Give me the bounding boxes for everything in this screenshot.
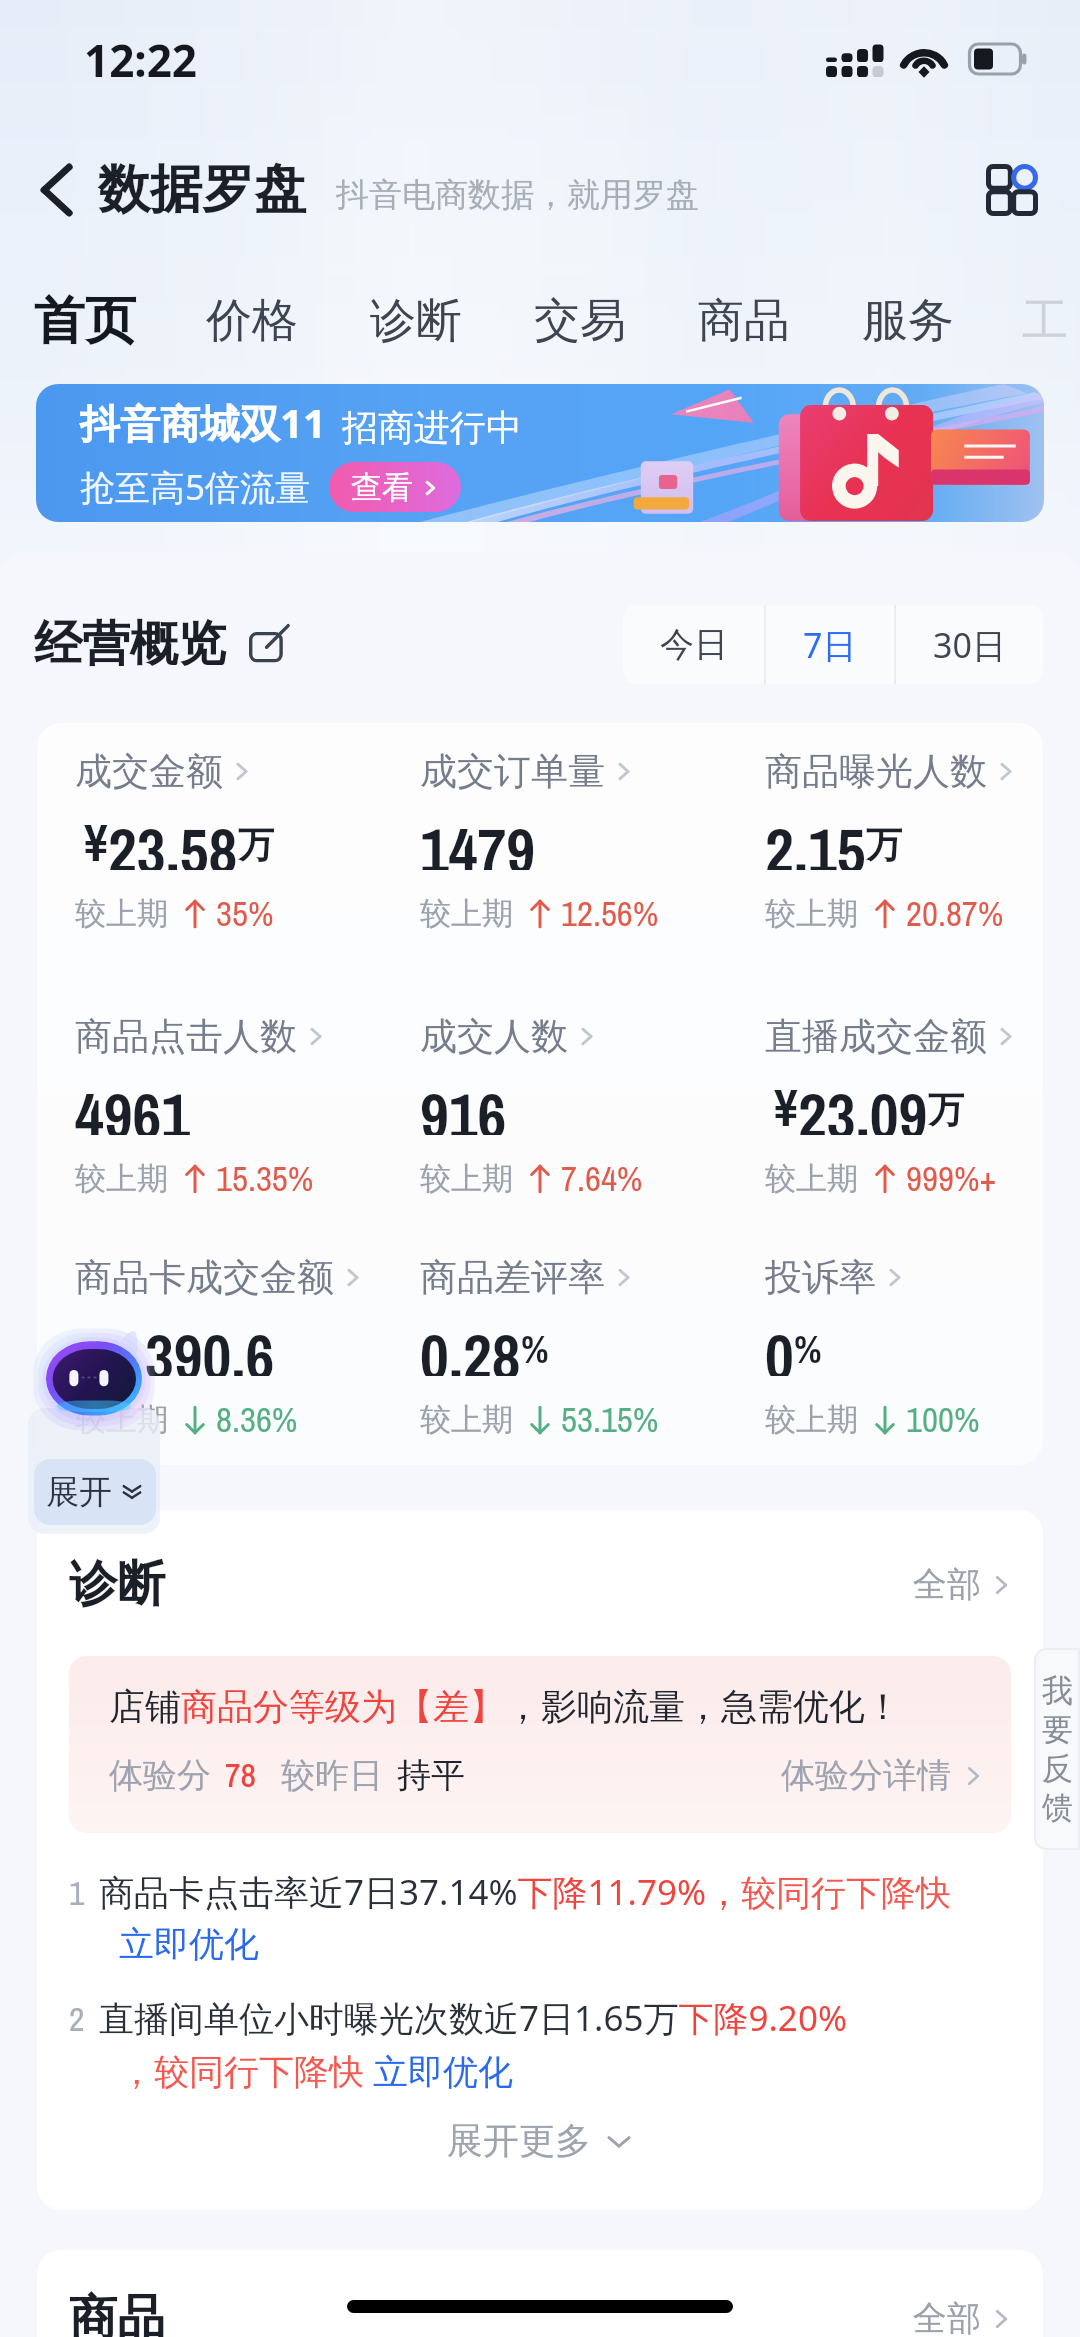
staticText: 工 bbox=[1022, 292, 1068, 350]
button[interactable]: 今日 bbox=[623, 605, 764, 684]
staticText: 15.35% bbox=[216, 1155, 314, 1202]
staticText: 直播成交金额 bbox=[765, 1013, 987, 1060]
staticText: 390.6 bbox=[145, 1314, 275, 1376]
button[interactable]: 商品卡成交金额 bbox=[75, 1254, 364, 1443]
button[interactable]: 商品差评率 bbox=[420, 1254, 659, 1443]
staticText: 0.28 bbox=[420, 1314, 521, 1376]
button[interactable]: 商品曝光人数 bbox=[765, 748, 1017, 937]
staticText: 53.15% bbox=[561, 1396, 659, 1443]
button[interactable]: 价格 bbox=[206, 292, 298, 350]
button[interactable]: 全部 bbox=[913, 1563, 1013, 1606]
staticText: 916 bbox=[420, 1073, 507, 1135]
staticText: 万 bbox=[866, 822, 902, 867]
staticText: 抖音商城双11 bbox=[80, 395, 326, 450]
staticText: 展开更多 bbox=[447, 2118, 591, 2163]
staticText: ¥ bbox=[84, 807, 108, 869]
staticText: 体验分详情 bbox=[781, 1754, 951, 1797]
button[interactable]: Back bbox=[26, 159, 88, 221]
staticText: % bbox=[794, 1324, 822, 1375]
button[interactable]: 全部 bbox=[913, 2297, 1013, 2337]
staticText: 1 bbox=[69, 1870, 85, 1916]
button[interactable]: 首页 bbox=[34, 289, 136, 353]
staticText: 全部 bbox=[913, 1563, 981, 1606]
staticText: 招商进行中 bbox=[342, 405, 522, 450]
button[interactable]: 成交人数 bbox=[420, 1013, 643, 1202]
staticText: 展开 bbox=[46, 1471, 112, 1513]
staticText: 较上期 bbox=[420, 894, 513, 933]
button[interactable]: AI assistant bbox=[34, 1322, 154, 1442]
staticText: 较上期 bbox=[765, 894, 858, 933]
staticText: 23.09 bbox=[798, 1073, 928, 1135]
staticText: 成交金额 bbox=[75, 748, 223, 795]
button[interactable]: 投诉率 bbox=[765, 1254, 980, 1443]
staticText: 交易 bbox=[534, 292, 626, 350]
staticText: 今日 bbox=[660, 623, 728, 666]
staticText: ¥ bbox=[774, 1072, 798, 1134]
button[interactable]: Edit metrics bbox=[246, 621, 292, 667]
staticText: 万 bbox=[928, 1087, 964, 1132]
staticText: 0 bbox=[765, 1314, 794, 1376]
button[interactable]: 体验分详情 bbox=[781, 1754, 985, 1797]
staticText: % bbox=[521, 1324, 549, 1375]
staticText: 2.15 bbox=[765, 808, 866, 870]
button[interactable]: 成交金额 bbox=[75, 748, 274, 937]
staticText: 反 bbox=[1042, 1749, 1073, 1788]
staticText: 1479 bbox=[420, 808, 535, 870]
staticText: 较上期 bbox=[75, 1400, 168, 1439]
staticText: 12.56% bbox=[561, 890, 659, 937]
staticText: 抢至高5倍流量 bbox=[80, 463, 311, 511]
staticText: 8.36% bbox=[216, 1396, 298, 1443]
staticText: 成交订单量 bbox=[420, 748, 605, 795]
staticText: 商品卡成交金额 bbox=[75, 1254, 334, 1301]
staticText: 持平 bbox=[397, 1754, 465, 1797]
staticText: 投诉率 bbox=[765, 1254, 876, 1301]
button[interactable]: 7日 bbox=[766, 605, 894, 684]
button[interactable]: 工 bbox=[1022, 292, 1068, 350]
button[interactable]: 查看 bbox=[351, 462, 439, 512]
button[interactable]: 1 bbox=[69, 1868, 952, 1966]
staticText: 4961 bbox=[75, 1073, 190, 1135]
staticText: 馈 bbox=[1042, 1788, 1073, 1827]
button[interactable]: 展开更多 bbox=[37, 2118, 1043, 2163]
staticText: 万 bbox=[238, 822, 274, 867]
staticText: 价格 bbox=[206, 292, 298, 350]
staticText: 较上期 bbox=[765, 1400, 858, 1439]
staticText: 20.87% bbox=[906, 890, 1004, 937]
staticText: 较上期 bbox=[75, 1159, 168, 1198]
button[interactable]: 商品点击人数 bbox=[75, 1013, 327, 1202]
button[interactable]: 我 bbox=[1034, 1648, 1080, 1850]
staticText: 商品 bbox=[698, 292, 790, 350]
staticText: 商品点击人数 bbox=[75, 1013, 297, 1060]
button[interactable]: App grid bbox=[976, 154, 1048, 226]
staticText: 商品差评率 bbox=[420, 1254, 605, 1301]
staticText: 我 bbox=[1042, 1671, 1073, 1710]
staticText: 商品 bbox=[69, 2288, 165, 2337]
staticText: 999%+ bbox=[906, 1155, 997, 1202]
button[interactable]: 直播成交金额 bbox=[765, 1013, 1017, 1202]
button[interactable]: 展开 bbox=[34, 1459, 156, 1525]
button[interactable]: 2 bbox=[69, 1994, 847, 2094]
staticText: 首页 bbox=[34, 289, 136, 353]
staticText: 诊断 bbox=[69, 1554, 165, 1614]
button[interactable]: 30日 bbox=[896, 605, 1043, 684]
staticText: 诊断 bbox=[370, 292, 462, 350]
button[interactable]: 商品 bbox=[698, 292, 790, 350]
button[interactable]: 成交订单量 bbox=[420, 748, 659, 937]
button[interactable]: 诊断 bbox=[370, 292, 462, 350]
staticText: 数据罗盘 bbox=[98, 157, 306, 223]
staticText: 全部 bbox=[913, 2297, 981, 2337]
staticText: 较上期 bbox=[765, 1159, 858, 1198]
staticText: 要 bbox=[1042, 1710, 1073, 1749]
staticText: 7日 bbox=[803, 622, 857, 668]
staticText: 较昨日 bbox=[281, 1754, 383, 1797]
staticText: 抖音电商数据，就用罗盘 bbox=[336, 174, 699, 216]
button[interactable]: 交易 bbox=[534, 292, 626, 350]
staticText: 35% bbox=[216, 890, 274, 937]
staticText: 成交人数 bbox=[420, 1013, 568, 1060]
staticText: 店铺商品分等级为【差】，影响流量，急需优化！ bbox=[109, 1684, 901, 1729]
staticText: 较上期 bbox=[420, 1400, 513, 1439]
staticText: 服务 bbox=[862, 292, 954, 350]
button[interactable]: 抖音商城双11 bbox=[36, 384, 1044, 522]
button[interactable]: 服务 bbox=[862, 292, 954, 350]
staticText: 2 bbox=[69, 1996, 85, 2042]
